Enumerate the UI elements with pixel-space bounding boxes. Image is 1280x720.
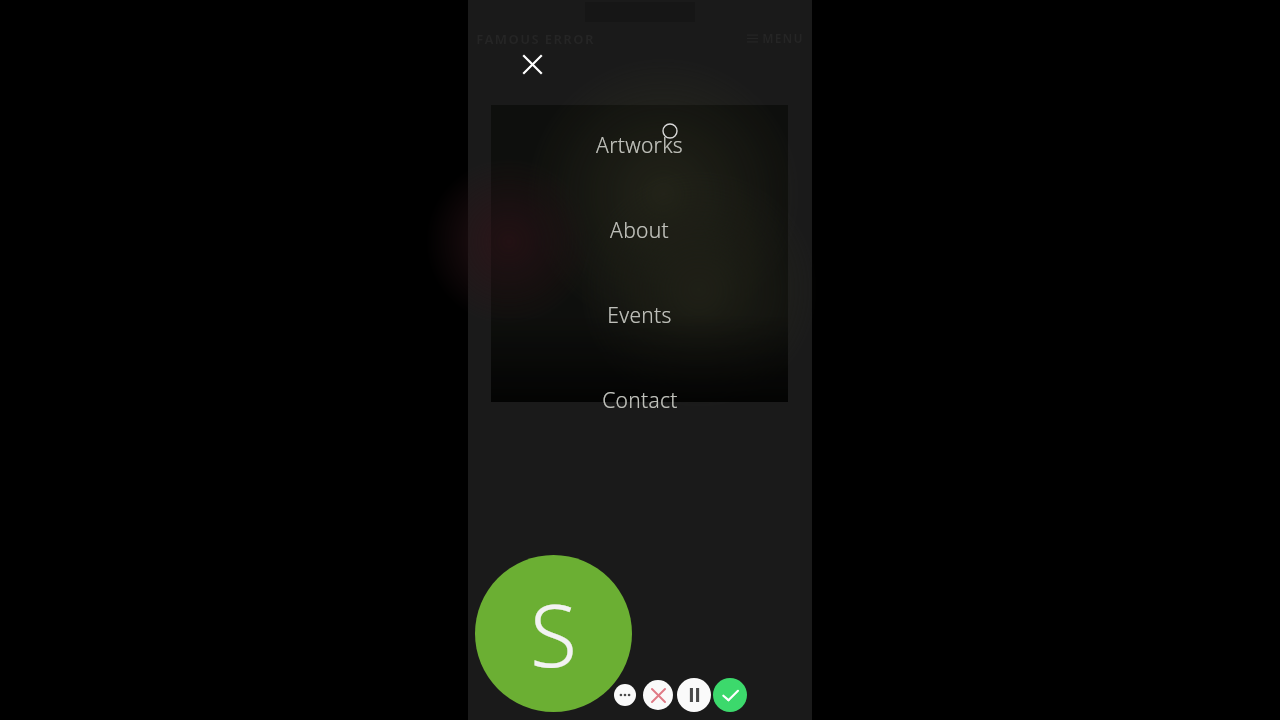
button[interactable]: Pause recording	[677, 678, 711, 712]
staticText: Events	[607, 301, 672, 330]
button[interactable]: More options	[614, 684, 636, 706]
staticText: Artworks	[596, 131, 683, 160]
button[interactable]: Screen recorder	[475, 555, 632, 712]
button[interactable]: Finish recording	[713, 678, 747, 712]
staticText: FAMOUS ERROR	[476, 30, 595, 48]
button[interactable]: Artworks	[491, 127, 788, 163]
button[interactable]: Stop recording	[643, 680, 673, 710]
button[interactable]: About	[491, 212, 788, 248]
button[interactable]: FAMOUS ERROR	[476, 30, 595, 48]
staticText: Contact	[602, 386, 678, 415]
staticText: MENU	[762, 30, 804, 46]
staticText: About	[610, 216, 669, 245]
staticText: S	[530, 575, 577, 692]
button[interactable]: MENU	[747, 30, 804, 46]
button[interactable]: Contact	[491, 382, 788, 418]
button[interactable]: Events	[491, 297, 788, 333]
button[interactable]: Close	[515, 47, 549, 81]
